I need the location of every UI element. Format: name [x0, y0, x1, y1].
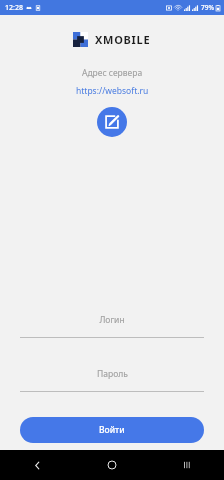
button[interactable]: Home: [74, 450, 149, 480]
staticText: 12:28: [5, 3, 23, 13]
staticText: https://websoft.ru: [76, 85, 149, 97]
button[interactable]: Войти: [20, 417, 204, 443]
button[interactable]: Recent apps: [149, 450, 224, 480]
staticText: Войти: [99, 424, 125, 436]
button[interactable]: Пароль: [20, 368, 204, 392]
button[interactable]: https://websoft.ru: [76, 85, 149, 97]
button[interactable]: Back: [0, 450, 74, 480]
staticText: Адрес сервера: [82, 67, 143, 79]
button[interactable]: Edit server address: [97, 107, 127, 137]
staticText: Логин: [99, 314, 125, 326]
staticText: 79%: [201, 3, 214, 12]
staticText: XMOBILE: [95, 32, 151, 47]
button[interactable]: Логин: [20, 314, 204, 338]
staticText: Пароль: [97, 368, 128, 380]
